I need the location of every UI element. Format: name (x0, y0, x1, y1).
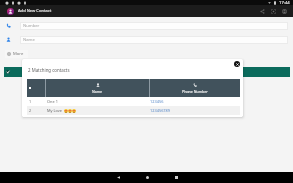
button[interactable]: Close (234, 61, 240, 67)
button[interactable]: Save (279, 6, 290, 17)
staticText: Name (23, 37, 35, 43)
staticText: More (13, 51, 24, 57)
button[interactable]: Share (257, 6, 268, 17)
staticText: 123456 (150, 99, 164, 104)
staticText: 2 Matching contacts (28, 67, 70, 73)
button[interactable]: 2 (27, 106, 240, 115)
button[interactable]: Scan (268, 6, 279, 17)
staticText: Add New Contact (18, 8, 52, 14)
button[interactable]: Recents (168, 172, 184, 183)
button[interactable]: Name (20, 36, 288, 44)
staticText: 123456789 (150, 108, 171, 113)
staticText: 1 (29, 99, 32, 104)
staticText: 17:44 (279, 0, 290, 5)
button[interactable]: More (7, 50, 26, 58)
staticText: Phone Number (182, 89, 208, 94)
button[interactable]: 1 (27, 97, 240, 106)
button[interactable]: Number (20, 22, 288, 30)
staticText: My Love (47, 108, 63, 113)
button[interactable]: Home (139, 172, 155, 183)
staticText: 2 (29, 108, 32, 113)
staticText: Number (23, 23, 40, 29)
staticText: Name (92, 89, 103, 94)
staticText: One 1 (47, 99, 58, 104)
button[interactable]: Back (110, 172, 126, 183)
